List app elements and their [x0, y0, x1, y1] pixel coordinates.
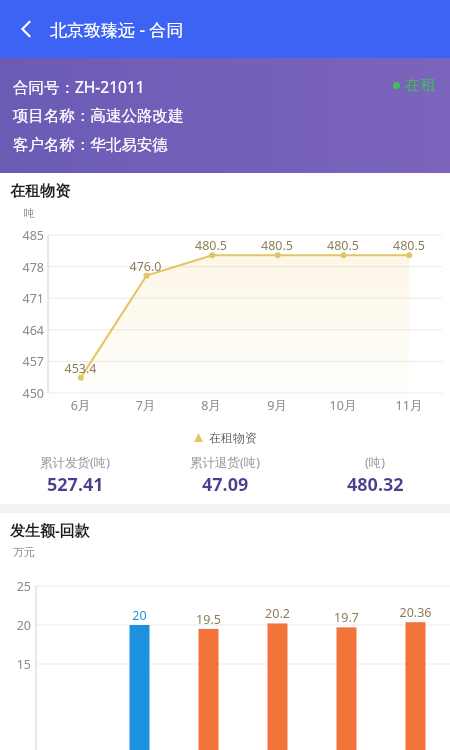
staticText: 吨 [24, 206, 35, 220]
staticText: 6月 [48, 397, 113, 414]
button[interactable]: Back [4, 7, 48, 51]
staticText: 7月 [113, 397, 178, 414]
staticText: 450 [0, 385, 44, 402]
staticText: 47.09 [202, 472, 249, 497]
staticText: 19.5 [174, 611, 243, 628]
staticText: 464 [0, 322, 44, 339]
staticText: 北京致臻远 - 合同 [50, 18, 184, 41]
button[interactable]: 累计发货(吨) [0, 454, 150, 497]
staticText: 19.7 [312, 609, 381, 626]
staticText: 25 [0, 578, 31, 595]
staticText: 15 [0, 656, 31, 673]
staticText: 457 [0, 353, 44, 370]
staticText: 20 [0, 617, 31, 634]
staticText: 在租 [405, 75, 436, 95]
staticText: 合同号：ZH-21011 [13, 76, 145, 97]
staticText: 480.32 [347, 472, 404, 497]
staticText: 在租物资 [10, 182, 70, 201]
staticText: 在租物资 [209, 430, 257, 445]
staticText: 485 [0, 227, 44, 244]
staticText: 项目名称：高速公路改建 [13, 106, 184, 126]
staticText: 10月 [310, 397, 376, 414]
staticText: 9月 [244, 397, 310, 414]
staticText: 480.5 [178, 237, 244, 254]
staticText: 480.5 [376, 237, 442, 254]
staticText: (吨) [365, 454, 386, 471]
staticText: 478 [0, 259, 44, 276]
staticText: 累计发货(吨) [40, 454, 111, 471]
staticText: 480.5 [244, 237, 310, 254]
staticText: 480.5 [310, 237, 376, 254]
staticText: 11月 [376, 397, 442, 414]
staticText: 20.2 [243, 605, 312, 622]
button[interactable]: (吨) [300, 454, 450, 497]
staticText: 客户名称：华北易安德 [13, 135, 168, 155]
staticText: 471 [0, 290, 44, 307]
staticText: 527.41 [47, 472, 104, 497]
staticText: 476.0 [113, 258, 178, 275]
staticText: 20.36 [381, 604, 450, 621]
staticText: 20 [105, 607, 174, 624]
staticText: 累计退货(吨) [190, 454, 261, 471]
button[interactable]: 累计退货(吨) [150, 454, 300, 497]
staticText: 453.4 [48, 360, 113, 377]
staticText: 8月 [178, 397, 244, 414]
staticText: 发生额-回款 [10, 520, 90, 540]
staticText: 万元 [13, 545, 35, 559]
